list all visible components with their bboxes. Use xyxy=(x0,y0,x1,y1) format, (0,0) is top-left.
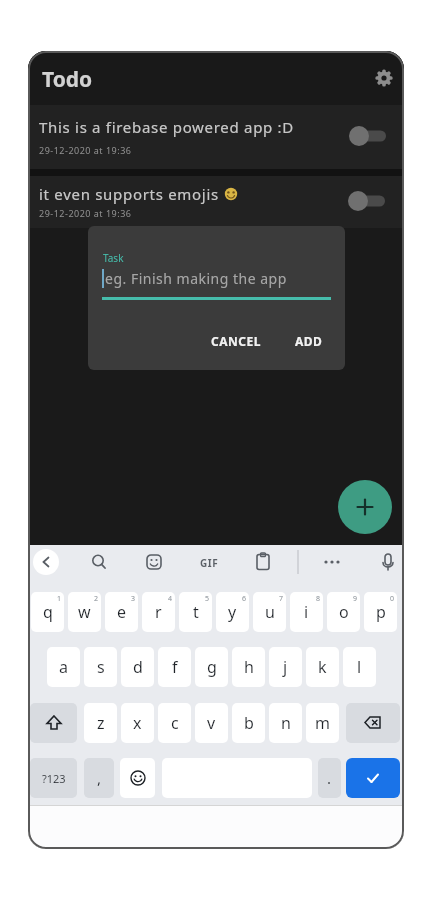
button[interactable]: o xyxy=(327,592,360,632)
button[interactable] xyxy=(338,480,392,534)
button[interactable]: p xyxy=(364,592,397,632)
staticText: k xyxy=(318,656,327,678)
button[interactable]: h xyxy=(232,647,265,687)
staticText: 29-12-2020 at 19:36 xyxy=(39,207,132,219)
staticText: 3 xyxy=(131,594,136,604)
staticText: 0 xyxy=(390,594,395,604)
button[interactable]: t xyxy=(179,592,212,632)
staticText: 29-12-2020 at 19:36 xyxy=(39,144,132,156)
staticText: Todo xyxy=(42,65,93,94)
staticText: l xyxy=(357,656,362,678)
staticText: d xyxy=(133,656,143,678)
staticText: t xyxy=(193,601,199,623)
button[interactable] xyxy=(346,703,400,743)
button[interactable]: q xyxy=(31,592,64,632)
staticText: Task xyxy=(103,251,124,265)
button[interactable]: r xyxy=(142,592,175,632)
button[interactable]: n xyxy=(269,703,302,743)
staticText: . xyxy=(327,768,332,788)
button[interactable]: a xyxy=(47,647,80,687)
button[interactable]: CANCEL xyxy=(208,329,264,353)
staticText: a xyxy=(59,656,68,678)
button[interactable]: j xyxy=(269,647,302,687)
staticText: f xyxy=(172,656,178,678)
staticText: z xyxy=(97,712,105,734)
staticText: n xyxy=(281,712,291,734)
button[interactable] xyxy=(372,67,396,91)
button[interactable]: u xyxy=(253,592,286,632)
button[interactable]: i xyxy=(290,592,323,632)
button[interactable]: f xyxy=(158,647,191,687)
button[interactable]: w xyxy=(68,592,101,632)
staticText: g xyxy=(207,656,217,678)
staticText: e xyxy=(117,601,127,623)
button[interactable]: k xyxy=(306,647,339,687)
button[interactable] xyxy=(346,758,400,798)
staticText: x xyxy=(133,712,142,734)
staticText: p xyxy=(376,601,386,623)
button[interactable]: d xyxy=(121,647,154,687)
staticText: h xyxy=(244,656,254,678)
button[interactable]: m xyxy=(306,703,339,743)
staticText: j xyxy=(283,656,288,678)
button[interactable]: g xyxy=(195,647,228,687)
staticText: 2 xyxy=(94,594,99,604)
staticText: it even supports emojis xyxy=(39,184,224,204)
button[interactable]: x xyxy=(121,703,154,743)
button[interactable]: s xyxy=(84,647,117,687)
staticText: 7 xyxy=(279,594,284,604)
button[interactable]: , xyxy=(84,758,114,798)
staticText: ADD xyxy=(295,333,323,349)
staticText: eg. Finish making the app xyxy=(105,269,287,288)
staticText: 6 xyxy=(242,594,247,604)
staticText: w xyxy=(78,601,91,623)
staticText: m xyxy=(315,712,330,734)
staticText: 4 xyxy=(168,594,173,604)
button[interactable]: y xyxy=(216,592,249,632)
button[interactable]: v xyxy=(195,703,228,743)
button[interactable]: it even supports emojis xyxy=(28,176,404,228)
button[interactable] xyxy=(350,186,392,216)
button[interactable] xyxy=(120,758,155,798)
button[interactable]: ADD xyxy=(291,329,327,353)
staticText: o xyxy=(339,601,349,623)
staticText: , xyxy=(97,768,102,788)
staticText: This is a firebase powered app :D xyxy=(39,117,294,137)
button[interactable]: . xyxy=(318,758,341,798)
button[interactable]: l xyxy=(343,647,376,687)
staticText: ?123 xyxy=(42,771,66,786)
staticText: CANCEL xyxy=(211,333,261,349)
staticText: b xyxy=(244,712,254,734)
staticText: r xyxy=(155,601,162,623)
button[interactable]: b xyxy=(232,703,265,743)
button[interactable] xyxy=(30,703,77,743)
button[interactable]: e xyxy=(105,592,138,632)
button[interactable]: This is a firebase powered app :D xyxy=(28,105,404,169)
button[interactable]: z xyxy=(84,703,117,743)
staticText: GIF xyxy=(200,556,219,570)
staticText: 5 xyxy=(205,594,210,604)
staticText: i xyxy=(304,601,309,623)
staticText: v xyxy=(207,712,216,734)
staticText: 1 xyxy=(57,594,62,604)
staticText: q xyxy=(43,601,53,623)
staticText: c xyxy=(171,712,179,734)
staticText: 9 xyxy=(353,594,358,604)
button[interactable]: c xyxy=(158,703,191,743)
staticText: y xyxy=(228,601,237,623)
staticText: u xyxy=(265,601,275,623)
staticText: 8 xyxy=(316,594,321,604)
staticText: s xyxy=(97,656,105,678)
button[interactable] xyxy=(351,121,393,151)
button[interactable]: ?123 xyxy=(30,758,77,798)
